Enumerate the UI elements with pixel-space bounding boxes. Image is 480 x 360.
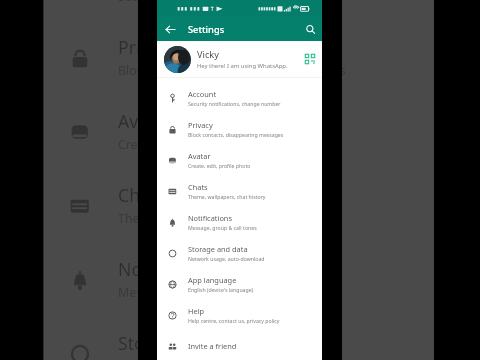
staticText: Privacy (118, 35, 177, 59)
staticText: Message, group & call tones (118, 284, 283, 301)
button[interactable]: Notifications (44, 242, 440, 316)
button[interactable]: Avatar (44, 94, 440, 168)
staticText: Privacy (188, 120, 213, 130)
button[interactable]: Vicky (157, 41, 322, 77)
staticText: Block contacts, disappearing messages (188, 131, 284, 138)
button[interactable]: App language (157, 268, 322, 299)
staticText: Network usage, auto-download (118, 358, 301, 360)
staticText: Create, edit, profile photo (118, 136, 268, 153)
staticText: Chats (188, 182, 208, 192)
staticText: Theme, wallpapers, chat history (118, 210, 303, 227)
staticText: Storage and data (188, 244, 248, 254)
button[interactable]: Account (157, 82, 322, 113)
staticText: Network usage, auto-download (188, 255, 265, 262)
button[interactable]: Chats (157, 175, 322, 206)
staticText: Hey there! I am using WhatsApp. (197, 62, 288, 70)
button[interactable]: Privacy (44, 20, 440, 94)
staticText: Notifications (188, 213, 232, 223)
button[interactable]: Invite a friend (157, 330, 322, 360)
staticText: Vicky (197, 48, 219, 61)
button[interactable]: Help (157, 299, 322, 330)
staticText: Chats (118, 183, 165, 207)
staticText: App language (188, 275, 237, 285)
button[interactable]: Avatar (157, 144, 322, 175)
button[interactable]: Search (300, 19, 320, 39)
staticText: Storage and data (118, 331, 261, 355)
staticText: Message, group & call tones (188, 224, 257, 231)
staticText: Security notifications, change number (118, 0, 339, 5)
button[interactable]: Notifications (157, 206, 322, 237)
button[interactable]: Privacy (157, 113, 322, 144)
staticText: Security notifications, change number (188, 100, 281, 107)
staticText: Block contacts, disappearing messages (118, 62, 346, 79)
button[interactable]: Back (160, 19, 180, 39)
staticText: Avatar (118, 109, 172, 133)
staticText: Account (188, 89, 217, 99)
staticText: English (device's language) (188, 286, 254, 293)
staticText: Theme, wallpapers, chat history (188, 193, 266, 200)
staticText: Help (188, 306, 205, 316)
button[interactable]: Storage and data (44, 316, 440, 360)
staticText: Settings (188, 23, 225, 36)
button[interactable]: Chats (44, 168, 440, 242)
staticText: Avatar (188, 151, 211, 161)
staticText: Help centre, contact us, privacy policy (188, 317, 280, 324)
button[interactable]: QR code (303, 52, 317, 66)
staticText: Invite a friend (188, 341, 237, 351)
staticText: Create, edit, profile photo (188, 162, 251, 169)
button[interactable]: Storage and data (157, 237, 322, 268)
staticText: Notifications (118, 257, 223, 281)
button[interactable]: Account (44, 0, 440, 20)
